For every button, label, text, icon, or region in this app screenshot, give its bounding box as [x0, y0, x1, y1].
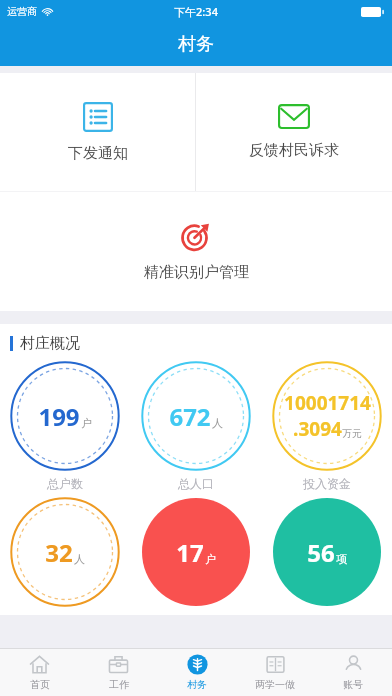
staticText: 户 — [205, 552, 216, 566]
button[interactable]: 账号 — [314, 649, 392, 696]
staticText: 工作 — [109, 678, 129, 691]
button[interactable]: 下发通知 — [0, 73, 195, 191]
button[interactable]: 10001714 — [261, 361, 392, 491]
staticText: 万元 — [342, 427, 362, 440]
staticText: 村务 — [187, 678, 207, 691]
button[interactable]: 32 — [0, 497, 130, 607]
staticText: 投入资金 — [303, 476, 351, 491]
staticText: 村务 — [178, 33, 214, 56]
staticText: 账号 — [343, 678, 363, 691]
staticText: 精准识别户管理 — [144, 263, 249, 282]
staticText: 反馈村民诉求 — [249, 141, 339, 160]
other: 下发通知 — [83, 102, 113, 132]
staticText: 56 — [307, 536, 335, 569]
staticText: 672 — [169, 400, 211, 433]
button[interactable]: 首页 — [0, 649, 79, 696]
button[interactable]: 199 — [0, 361, 130, 491]
staticText: 人 — [74, 552, 85, 566]
staticText: 10001714 — [284, 390, 371, 416]
staticText: 两学一做 — [255, 678, 295, 691]
button[interactable]: 反馈村民诉求 — [196, 73, 392, 191]
button[interactable]: 村务 — [158, 649, 236, 696]
staticText: 总户数 — [47, 476, 83, 491]
button[interactable]: 工作 — [79, 649, 158, 696]
button[interactable]: 672 — [130, 361, 261, 491]
staticText: 下发通知 — [68, 144, 128, 163]
staticText: 下午2:34 — [174, 4, 218, 19]
staticText: 人 — [212, 416, 223, 430]
button[interactable]: 17 — [130, 497, 261, 607]
staticText: 项 — [336, 552, 347, 566]
staticText: .3094 — [293, 416, 342, 442]
button[interactable]: 两学一做 — [236, 649, 314, 696]
staticText: 总人口 — [178, 476, 214, 491]
button[interactable]: 56 — [261, 497, 392, 607]
staticText: 首页 — [30, 678, 50, 691]
staticText: 32 — [45, 536, 73, 569]
staticText: 村庄概况 — [20, 334, 80, 353]
button[interactable]: 精准识别户管理 — [0, 192, 392, 311]
staticText: 199 — [38, 400, 80, 433]
other: 精准识别户管理 — [181, 221, 211, 251]
other: 反馈村民诉求 — [278, 104, 310, 129]
staticText: 户 — [81, 416, 92, 430]
staticText: 17 — [176, 536, 204, 569]
staticText: 运营商 — [7, 5, 37, 18]
